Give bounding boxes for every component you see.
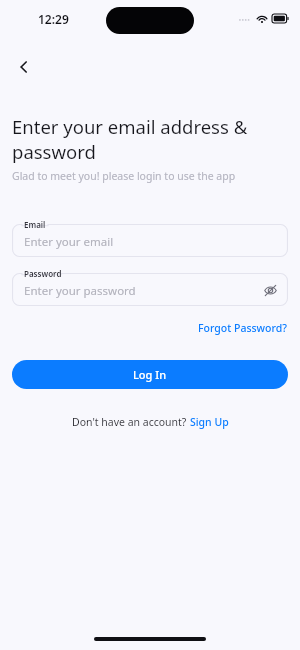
staticText: Enter your email address & password bbox=[12, 114, 288, 164]
button[interactable]: Email bbox=[12, 224, 288, 257]
staticText: Email bbox=[24, 219, 46, 230]
button[interactable]: Sign Up bbox=[190, 415, 229, 429]
button[interactable]: Forgot Password? bbox=[197, 319, 288, 337]
staticText: Sign Up bbox=[190, 415, 229, 429]
staticText: Enter your email bbox=[24, 234, 114, 250]
staticText: 12:29 bbox=[38, 11, 69, 27]
button[interactable]: Back bbox=[8, 51, 40, 83]
staticText: Enter your password bbox=[24, 283, 136, 299]
button[interactable]: Log In bbox=[12, 360, 288, 389]
staticText: Forgot Password? bbox=[198, 321, 287, 335]
button[interactable]: Password bbox=[12, 273, 288, 306]
staticText: Log In bbox=[133, 367, 167, 382]
staticText: Don't have an account? bbox=[72, 415, 190, 429]
staticText: Password bbox=[24, 268, 62, 279]
button[interactable]: Toggle password visibility bbox=[260, 280, 280, 300]
staticText: Glad to meet you! please login to use th… bbox=[12, 169, 236, 183]
